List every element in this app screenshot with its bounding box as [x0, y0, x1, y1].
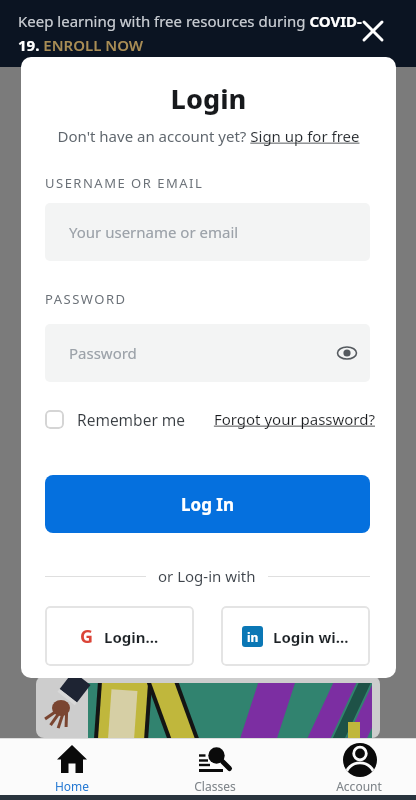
button[interactable]: Home — [40, 739, 104, 795]
button[interactable]: Your username or email — [45, 203, 370, 261]
staticText: 19. ENROLL NOW — [18, 35, 144, 55]
staticText: Log In — [181, 493, 234, 516]
staticText: Your username or email — [69, 222, 239, 242]
staticText: in — [247, 629, 259, 645]
button[interactable]: in — [221, 606, 370, 666]
staticText: Password — [69, 343, 137, 363]
button[interactable]: Classes — [183, 739, 247, 795]
button[interactable]: Don't have an account yet? Sign up for f… — [21, 126, 396, 146]
staticText: Login wi... — [273, 627, 349, 647]
staticText: Keep learning with free resources during… — [18, 11, 362, 31]
staticText: Account — [327, 778, 391, 794]
staticText: Classes — [183, 778, 247, 794]
button[interactable]: G — [45, 606, 194, 666]
staticText: Login... — [104, 627, 159, 647]
button[interactable]: Log In — [45, 475, 370, 533]
button[interactable]: Forgot your password? — [21, 409, 375, 429]
staticText: G — [80, 624, 94, 649]
staticText: Home — [40, 778, 104, 794]
button[interactable]: Password — [45, 324, 370, 382]
button[interactable] — [358, 16, 388, 46]
button[interactable]: Remember me — [45, 409, 186, 430]
staticText: Remember me — [77, 409, 186, 430]
staticText: PASSWORD — [45, 290, 127, 308]
button[interactable]: Account — [327, 739, 391, 795]
staticText: USERNAME OR EMAIL — [45, 174, 204, 192]
staticText: Login — [21, 80, 396, 117]
staticText: or Log-in with — [158, 566, 256, 586]
